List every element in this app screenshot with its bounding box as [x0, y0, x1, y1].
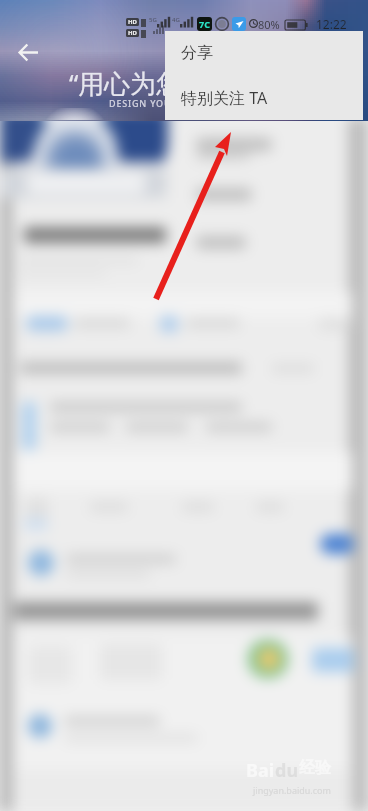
staticText: jingyan.baidu.com — [253, 784, 331, 796]
staticText: 特别关注 TA — [181, 87, 268, 109]
staticText: du — [275, 758, 299, 783]
staticText: 7C — [199, 18, 210, 30]
staticText: HD — [128, 18, 137, 26]
staticText: HD — [128, 29, 137, 37]
staticText: Bai — [246, 758, 275, 783]
staticText: 分享 — [181, 43, 213, 63]
staticText: 12:22 — [316, 16, 347, 32]
staticText: DESIGN YOUR F — [109, 97, 187, 109]
staticText: 5G — [149, 16, 157, 24]
staticText: 经验 — [299, 758, 331, 778]
staticText: 80% — [258, 17, 280, 32]
button[interactable]: 特别关注 TA — [165, 75, 363, 120]
staticText: “用心为您 — [69, 65, 183, 101]
button[interactable]: Back — [10, 34, 46, 70]
staticText: 4G — [172, 16, 180, 24]
button[interactable]: 分享 — [165, 31, 363, 75]
